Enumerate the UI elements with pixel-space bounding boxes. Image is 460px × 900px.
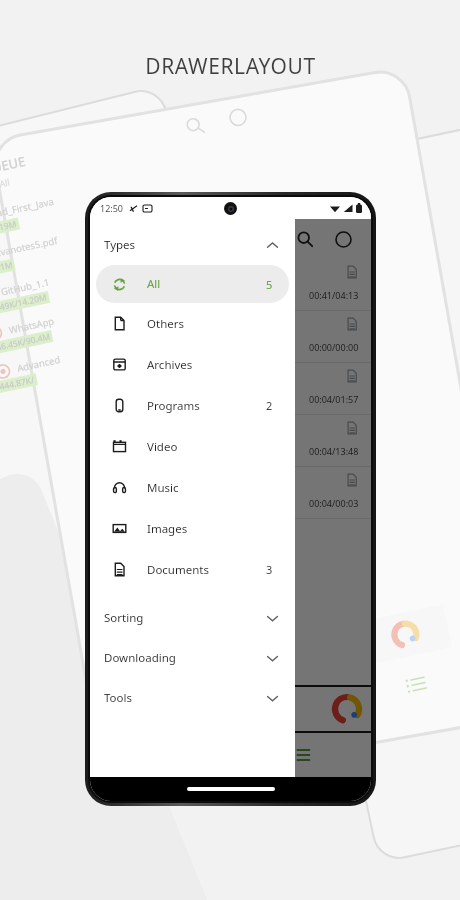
staticText: 478.49K/14.20M (0, 291, 48, 317)
staticText: All (147, 276, 161, 292)
button[interactable]: Types (90, 225, 295, 265)
staticText: setup.apk (102, 369, 149, 383)
staticText: 12:50 (100, 202, 124, 214)
staticText: 2 (266, 398, 273, 413)
button[interactable]: archive.zip (90, 311, 371, 362)
staticText: archive.zip (102, 317, 152, 331)
staticText: 60M/45.19M (0, 218, 18, 240)
button[interactable]: setup.apk (90, 363, 371, 414)
staticText: 5 (266, 277, 273, 292)
staticText: Archives (147, 357, 193, 373)
staticText: DRAWERLAYOUT (145, 52, 316, 81)
button[interactable]: Images (90, 508, 295, 549)
button[interactable]: Search (291, 225, 319, 253)
button[interactable]: List (230, 733, 371, 777)
button[interactable]: Video (90, 426, 295, 467)
button[interactable]: Tools (90, 678, 295, 718)
button[interactable]: movie.mkv (90, 467, 371, 518)
staticText: Advanced (16, 353, 61, 375)
staticText: Images (147, 521, 188, 537)
staticText: WhatsApp (8, 314, 55, 337)
button[interactable]: Downloading (90, 638, 295, 678)
staticText: Tools (104, 690, 132, 706)
staticText: Head_First_Java (0, 195, 56, 222)
button[interactable]: Programs (90, 385, 295, 426)
button[interactable]: Archives (90, 344, 295, 385)
staticText: 446.45K/90.4M (0, 330, 51, 355)
staticText: Documents (147, 562, 209, 578)
staticText: Downloading (104, 650, 176, 666)
staticText: QUEUE (0, 152, 27, 179)
staticText: document.pdf (102, 265, 169, 279)
staticText: GitHub_1.1 (0, 275, 51, 298)
staticText: 0K/5.01M (0, 259, 14, 278)
staticText: Programs (147, 398, 200, 414)
staticText: 3 (266, 562, 273, 577)
button[interactable]: document.pdf (90, 259, 371, 310)
button[interactable]: notebook (90, 415, 371, 466)
staticText: 00:04/01:57 (309, 393, 359, 405)
button[interactable]: Sorting (90, 598, 295, 638)
staticText: Sorting (104, 610, 144, 626)
staticText: Music (147, 480, 179, 496)
staticText: Video (147, 439, 178, 455)
button[interactable]: Music (90, 467, 295, 508)
staticText: 444.87K/ (0, 374, 36, 393)
button[interactable]: All (96, 265, 289, 303)
staticText: 00:41/04:13 (309, 289, 359, 301)
staticText: Types (104, 237, 136, 253)
staticText: 00:00/00:00 (309, 341, 359, 353)
button[interactable]: Help (329, 225, 357, 253)
staticText: 00:04/00:03 (309, 497, 359, 509)
staticText: All (0, 175, 11, 189)
button[interactable]: Documents (90, 549, 295, 590)
staticText: javanotes5.pdf (0, 234, 59, 260)
staticText: movie.mkv (102, 473, 153, 487)
staticText: 00:04/13:48 (309, 445, 359, 457)
staticText: Others (147, 316, 184, 332)
button[interactable]: Others (90, 303, 295, 344)
